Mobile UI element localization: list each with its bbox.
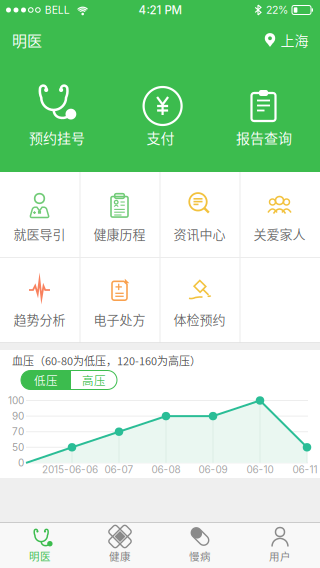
button[interactable]: 关爱家人 (240, 172, 320, 257)
button[interactable]: 报告查询 (213, 62, 320, 172)
button[interactable]: 高压 (71, 370, 117, 389)
staticText: 06-08 (151, 463, 180, 476)
staticText: 2015-06-06 (42, 463, 98, 476)
staticText: 电子处方 (93, 310, 145, 328)
staticText: 高压 (82, 372, 106, 388)
button[interactable]: 低压 (21, 370, 71, 389)
staticText: 血压（60-80为低压，120-160为高压） (12, 352, 201, 368)
staticText: 06-10 (246, 463, 273, 476)
button[interactable]: 支付 (107, 62, 213, 172)
staticText: 用户 (269, 548, 291, 564)
button[interactable]: 趋势分析 (0, 257, 80, 343)
staticText: 明医 (12, 29, 42, 51)
staticText: 06-09 (198, 463, 227, 476)
button[interactable]: 健康历程 (80, 172, 160, 257)
staticText: 90 (12, 410, 24, 422)
button[interactable]: 用户 (240, 522, 320, 568)
staticText: 100 (8, 394, 24, 407)
button[interactable]: 健康 (80, 522, 160, 568)
staticText: 预约挂号 (29, 127, 85, 148)
staticText: 上海 (280, 30, 308, 50)
button[interactable]: 资讯中心 (160, 172, 240, 257)
staticText: 就医导引 (13, 224, 65, 243)
staticText: 50 (12, 441, 24, 453)
button[interactable]: 明医 (0, 522, 80, 568)
staticText: 支付 (147, 127, 175, 148)
staticText: 慢病 (189, 548, 211, 564)
staticText: BELL (45, 4, 70, 16)
staticText: 22% (266, 4, 288, 16)
staticText: 关爱家人 (253, 224, 305, 243)
staticText: 体检预约 (173, 310, 225, 328)
button[interactable]: 预约挂号 (0, 62, 107, 172)
button[interactable]: 电子处方 (80, 257, 160, 343)
staticText: 低压 (34, 372, 58, 388)
staticText: 健康历程 (93, 224, 145, 243)
button[interactable]: 就医导引 (0, 172, 80, 257)
button[interactable]: 上海 (263, 19, 308, 61)
staticText: 健康 (109, 548, 131, 564)
button[interactable]: 体检预约 (160, 257, 240, 343)
staticText: 0 (18, 457, 24, 469)
staticText: 资讯中心 (173, 224, 225, 243)
staticText: 报告查询 (236, 127, 292, 148)
staticText: 70 (12, 426, 24, 438)
button[interactable]: 慢病 (160, 522, 240, 568)
staticText: 06-07 (104, 463, 133, 476)
staticText: 明医 (29, 548, 51, 564)
staticText: 趋势分析 (13, 310, 65, 328)
staticText: 4:21 PM (138, 3, 181, 17)
staticText: 06-11 (292, 463, 317, 476)
